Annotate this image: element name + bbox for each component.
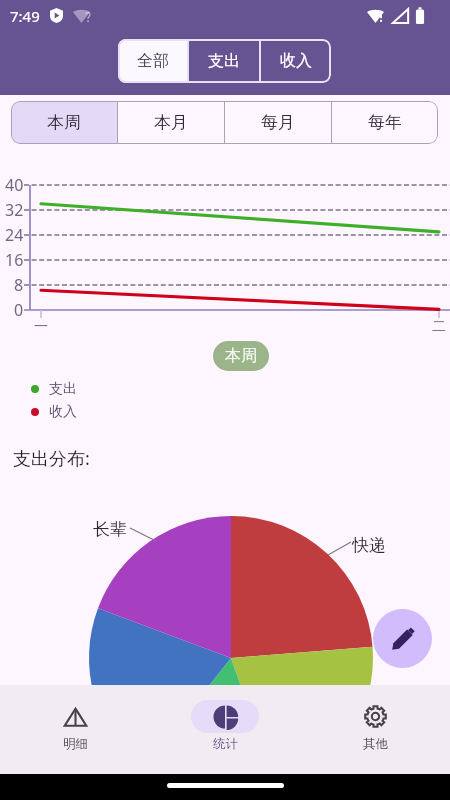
staticText: 32: [5, 199, 24, 221]
staticText: 其他: [363, 736, 388, 752]
button[interactable]: 本周: [11, 101, 117, 144]
button[interactable]: 统计: [150, 685, 300, 774]
staticText: 统计: [213, 736, 238, 752]
staticText: 收入: [49, 403, 77, 420]
staticText: 0: [14, 299, 24, 321]
button[interactable]: 支出: [189, 39, 259, 83]
button[interactable]: 全部: [118, 39, 187, 83]
button[interactable]: 每月: [225, 101, 331, 144]
staticText: 支出: [49, 380, 77, 397]
staticText: 每月: [261, 112, 295, 133]
staticText: 二: [432, 318, 446, 336]
button[interactable]: 本周: [213, 341, 269, 371]
staticText: 7:49: [10, 6, 40, 26]
button[interactable]: 收入: [261, 39, 331, 83]
staticText: 全部: [137, 51, 169, 71]
button[interactable]: 其他: [300, 685, 450, 774]
staticText: 24: [5, 224, 24, 246]
staticText: 16: [5, 249, 24, 271]
button[interactable]: 本月: [118, 101, 224, 144]
staticText: 本月: [154, 112, 188, 133]
staticText: 本周: [47, 112, 81, 133]
staticText: 40: [5, 174, 24, 196]
staticText: 一: [34, 318, 48, 336]
staticText: 明细: [63, 736, 88, 752]
staticText: 每年: [368, 112, 402, 133]
staticText: 长辈: [93, 519, 127, 540]
staticText: 收入: [280, 51, 312, 71]
staticText: 8: [14, 274, 24, 296]
staticText: 支出分布:: [13, 446, 90, 471]
staticText: 快递: [352, 535, 386, 556]
staticText: 本周: [225, 346, 257, 366]
staticText: 支出: [208, 51, 240, 71]
button[interactable]: 每年: [332, 101, 438, 144]
button[interactable]: Edit: [373, 609, 432, 668]
button[interactable]: 明细: [0, 685, 150, 774]
